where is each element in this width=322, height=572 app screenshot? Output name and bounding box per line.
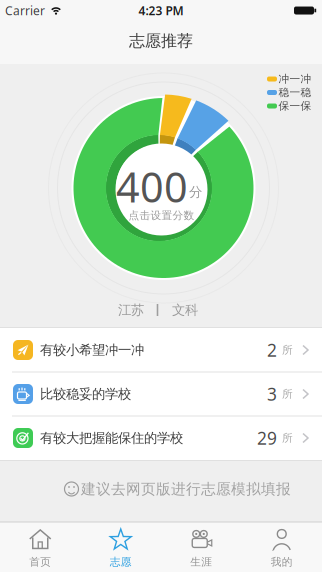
staticText: 分: [189, 184, 202, 200]
button[interactable]: 比较稳妥的学校: [0, 372, 322, 416]
staticText: 比较稳妥的学校: [40, 386, 131, 402]
staticText: 志愿: [110, 555, 132, 568]
staticText: 冲一冲: [278, 72, 311, 85]
staticText: 2: [267, 338, 277, 361]
staticText: 29: [257, 426, 277, 449]
button[interactable]: 生涯: [161, 523, 241, 572]
staticText: Carrier: [5, 2, 45, 18]
staticText: 所: [282, 387, 293, 400]
button[interactable]: 有较小希望冲一冲: [0, 328, 322, 372]
staticText: 4:23 PM: [138, 2, 183, 18]
staticText: 所: [282, 343, 293, 356]
staticText: 3: [267, 382, 277, 405]
staticText: 生涯: [190, 555, 212, 568]
staticText: 江苏: [118, 302, 144, 318]
staticText: 保一保: [278, 99, 311, 112]
button[interactable]: 有较大把握能保住的学校: [0, 416, 322, 460]
button[interactable]: 我的: [242, 523, 322, 572]
staticText: 400: [116, 159, 188, 214]
staticText: 首页: [29, 555, 51, 568]
staticText: 有较小希望冲一冲: [40, 342, 144, 358]
button[interactable]: 志愿: [81, 523, 161, 572]
button[interactable]: 400: [115, 143, 207, 235]
staticText: 志愿推荐: [129, 31, 193, 51]
staticText: 稳一稳: [278, 86, 311, 99]
staticText: 点击设置分数: [128, 209, 194, 222]
staticText: 建议去网页版进行志愿模拟填报: [81, 480, 291, 498]
staticText: 有较大把握能保住的学校: [40, 430, 183, 446]
staticText: 所: [282, 431, 293, 444]
button[interactable]: 首页: [0, 523, 80, 572]
staticText: 我的: [271, 555, 293, 568]
staticText: 文科: [172, 302, 198, 318]
